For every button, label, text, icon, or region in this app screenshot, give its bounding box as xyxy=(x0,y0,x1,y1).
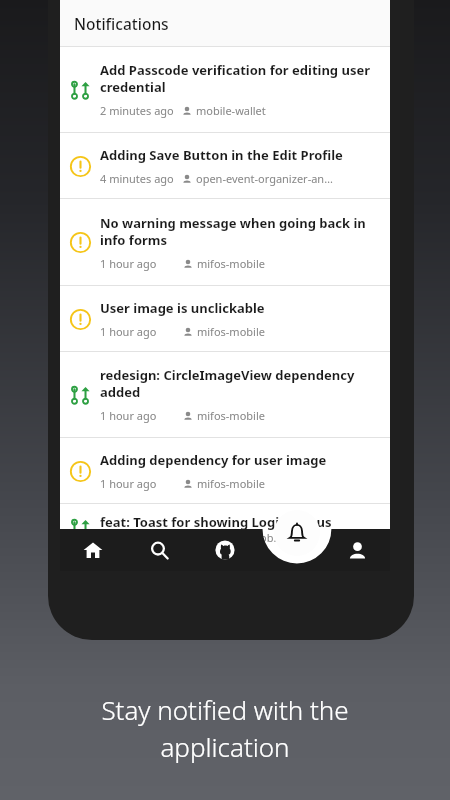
staticText: 1 hour ago xyxy=(100,256,157,271)
staticText: mifos-mobile xyxy=(197,256,265,271)
staticText: Notifications xyxy=(74,13,169,34)
staticText: application xyxy=(160,729,290,764)
staticText: 1 hour ago xyxy=(100,408,157,423)
staticText: ob… xyxy=(260,530,283,545)
staticText: Adding dependency for user image xyxy=(100,451,327,469)
staticText: feat: Toast for showing Login status xyxy=(100,513,332,531)
button[interactable]: redesign: CircleImageView dependency add… xyxy=(60,352,390,437)
staticText: 1 hour ago xyxy=(100,476,157,491)
button[interactable]: Add Passcode verification for editing us… xyxy=(60,47,390,132)
button[interactable]: Home xyxy=(60,529,126,571)
staticText: No warning message when going back in in… xyxy=(100,214,384,249)
staticText: 2 minutes ago xyxy=(100,103,174,118)
staticText: Add Passcode verification for editing us… xyxy=(100,61,384,96)
button[interactable]: No warning message when going back in in… xyxy=(60,199,390,285)
staticText: mifos-mobile xyxy=(197,476,265,491)
button[interactable]: Adding Save Button in the Edit Profile xyxy=(60,133,390,198)
staticText: redesign: CircleImageView dependency add… xyxy=(100,366,384,401)
staticText: Adding Save Button in the Edit Profile xyxy=(100,146,343,164)
staticText: 4 minutes ago xyxy=(100,171,174,186)
button[interactable]: Repositories xyxy=(192,529,258,571)
staticText: User image is unclickable xyxy=(100,299,265,317)
button[interactable]: Profile xyxy=(324,529,390,571)
button[interactable]: Search xyxy=(126,529,192,571)
button[interactable]: feat: Toast for showing Login status xyxy=(60,504,390,537)
staticText: mifos-mobile xyxy=(197,324,265,339)
staticText: open-event-organizer-an… xyxy=(196,171,333,186)
button[interactable]: Notifications xyxy=(274,510,320,556)
staticText: Stay notified with the xyxy=(101,692,349,727)
staticText: mobile-wallet xyxy=(196,103,266,118)
button[interactable]: User image is unclickable xyxy=(60,286,390,351)
staticText: 1 hour ago xyxy=(100,324,157,339)
button[interactable]: Adding dependency for user image xyxy=(60,438,390,503)
staticText: mifos-mobile xyxy=(197,408,265,423)
